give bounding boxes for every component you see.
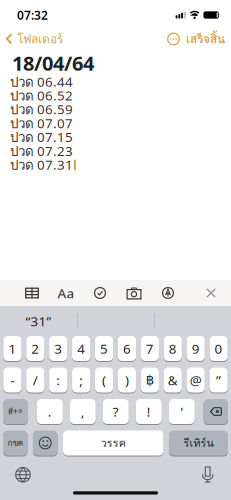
staticText: 5: [100, 340, 108, 357]
staticText: (: [102, 371, 106, 389]
staticText: ฿: [146, 372, 154, 387]
staticText: เสร็จสิ้น: [186, 30, 225, 48]
button[interactable]: More: [167, 32, 186, 45]
staticText: กขค: [8, 437, 23, 449]
button[interactable]: @: [187, 367, 205, 392]
button[interactable]: 4: [72, 336, 90, 361]
staticText: .: [48, 403, 52, 420]
button[interactable]: Delete: [203, 399, 228, 424]
button[interactable]: 6: [118, 336, 136, 361]
button[interactable]: ,: [70, 399, 96, 424]
button[interactable]: 3: [49, 336, 67, 361]
button[interactable]: “31”: [0, 306, 77, 336]
staticText: โฟลเดอร์: [17, 30, 63, 48]
staticText: @: [190, 371, 202, 389]
button[interactable]: 0: [209, 336, 228, 361]
button[interactable]: ': [169, 399, 195, 424]
button[interactable]: !: [136, 399, 162, 424]
button[interactable]: 2: [26, 336, 44, 361]
button[interactable]: :: [49, 367, 67, 392]
staticText: Aa: [57, 284, 74, 302]
button[interactable]: Insert table: [15, 280, 49, 306]
staticText: :: [56, 371, 60, 389]
staticText: 4: [77, 340, 85, 357]
button[interactable]: ”: [209, 367, 228, 392]
staticText: ': [180, 403, 183, 420]
button[interactable]: Format: [49, 280, 83, 306]
staticText: ): [125, 371, 129, 389]
staticText: ปวด 07.07: [10, 113, 73, 134]
staticText: ,: [81, 403, 85, 420]
button[interactable]: รีเทิร์น: [169, 430, 228, 455]
staticText: 0: [215, 340, 223, 357]
button[interactable]: กขค: [3, 430, 27, 455]
staticText: ปวด 06.59: [10, 99, 73, 120]
button[interactable]: &: [164, 367, 182, 392]
staticText: 8: [169, 340, 177, 357]
staticText: -: [10, 371, 14, 389]
button[interactable]: ฿: [141, 367, 159, 392]
staticText: “31”: [25, 312, 51, 330]
button[interactable]: Markup: [151, 280, 185, 306]
staticText: #+=: [8, 406, 23, 417]
button[interactable]: Emoji: [33, 430, 57, 455]
staticText: &: [168, 371, 178, 389]
staticText: 2: [31, 340, 39, 357]
button[interactable]: วรรค: [63, 430, 163, 455]
staticText: ”: [216, 371, 221, 389]
button[interactable]: .: [37, 399, 63, 424]
button[interactable]: 8: [164, 336, 182, 361]
button[interactable]: 9: [187, 336, 205, 361]
staticText: รีเทิร์น: [183, 435, 213, 451]
staticText: ปวด 06.52: [10, 85, 73, 106]
button[interactable]: -: [3, 367, 22, 392]
button[interactable]: (: [95, 367, 113, 392]
staticText: ปวด 07.15: [10, 127, 73, 148]
button[interactable]: 7: [141, 336, 159, 361]
button[interactable]: /: [26, 367, 44, 392]
button[interactable]: โฟลเดอร์: [0, 30, 63, 48]
staticText: 9: [192, 340, 200, 357]
button[interactable]: ;: [72, 367, 90, 392]
button[interactable]: Camera: [117, 280, 151, 306]
button[interactable]: ?: [103, 399, 129, 424]
staticText: 1: [8, 340, 16, 357]
staticText: ?: [113, 403, 119, 420]
staticText: วรรค: [101, 435, 126, 451]
staticText: ปวด 06.44: [10, 72, 73, 92]
staticText: 7: [146, 340, 154, 357]
button[interactable]: #+=: [3, 399, 28, 424]
staticText: 07:32: [17, 7, 48, 23]
staticText: ปวด 07.23: [10, 141, 73, 161]
staticText: !: [147, 403, 151, 420]
button[interactable]: 1: [3, 336, 22, 361]
button[interactable]: ): [118, 367, 136, 392]
staticText: 6: [123, 340, 131, 357]
button[interactable]: Next keyboard: [0, 467, 31, 483]
button[interactable]: 5: [95, 336, 113, 361]
staticText: /: [33, 371, 38, 389]
staticText: ปวด 07.31: [10, 155, 73, 175]
staticText: 18/04/64: [12, 50, 94, 76]
button[interactable]: เสร็จสิ้น: [186, 30, 231, 48]
staticText: 3: [54, 340, 62, 357]
staticText: ;: [79, 371, 83, 389]
button[interactable]: Dismiss keyboard: [198, 280, 224, 306]
button[interactable]: Dictate: [201, 466, 231, 483]
button[interactable]: Checklist: [83, 280, 117, 306]
